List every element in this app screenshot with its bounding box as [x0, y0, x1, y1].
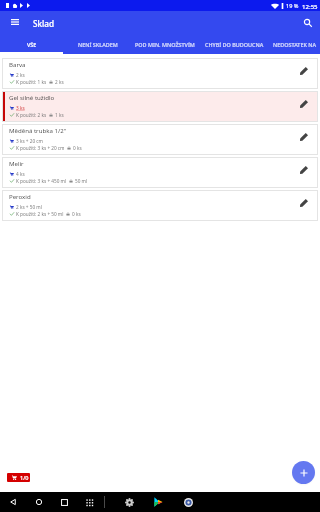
- staticText: NENÍ SKLADEM: [78, 41, 118, 48]
- button[interactable]: Home: [31, 492, 47, 512]
- button[interactable]: Peroxid: [3, 191, 317, 220]
- staticText: 2 ks: [16, 72, 25, 78]
- staticText: 3 ks + 20 cm: [16, 138, 43, 144]
- staticText: 4 ks: [16, 171, 25, 177]
- staticText: 12:55: [302, 2, 318, 10]
- button[interactable]: Add: [292, 461, 315, 484]
- staticText: POD MIN. MNOŽSTVÍM: [135, 41, 195, 48]
- staticText: 1 ks: [55, 112, 64, 118]
- staticText: 2 ks: [55, 79, 64, 85]
- button[interactable]: Edit: [296, 129, 312, 145]
- staticText: 19 %: [286, 2, 299, 10]
- button[interactable]: Edit: [296, 63, 312, 79]
- staticText: Gel silné tužidlo: [9, 93, 55, 101]
- staticText: 0 ks: [73, 145, 82, 151]
- staticText: Barva: [9, 60, 26, 68]
- button[interactable]: NENÍ SKLADEM: [64, 35, 131, 54]
- button[interactable]: Gel silné tužidlo: [3, 92, 317, 121]
- staticText: CHYBÍ DO BUDOUCNA: [205, 41, 264, 48]
- staticText: K použití: 3 ks + 450 ml: [16, 178, 67, 184]
- button[interactable]: Apps: [81, 492, 97, 512]
- button[interactable]: NEDOSTATEK NA: [270, 35, 320, 54]
- staticText: Měděná trubka 1/2": [9, 126, 67, 134]
- staticText: K použití: 3 ks + 20 cm: [16, 145, 65, 151]
- staticText: K použití: 1 ks: [16, 79, 47, 85]
- button[interactable]: Recents: [56, 492, 72, 512]
- button[interactable]: Settings: [121, 492, 137, 512]
- staticText: Sklad: [33, 18, 55, 29]
- staticText: VŠE: [27, 41, 37, 48]
- button[interactable]: Play Store: [150, 492, 166, 512]
- button[interactable]: Menu: [11, 16, 19, 30]
- button[interactable]: Edit: [296, 162, 312, 178]
- button[interactable]: Browser: [180, 492, 196, 512]
- button[interactable]: POD MIN. MNOŽSTVÍM: [131, 35, 199, 54]
- button[interactable]: Barva: [3, 59, 317, 88]
- button[interactable]: Edit: [296, 195, 312, 211]
- staticText: K použití: 2 ks: [16, 112, 47, 118]
- staticText: Peroxid: [9, 192, 31, 200]
- staticText: 2 ks + 50 ml: [16, 204, 42, 210]
- staticText: NEDOSTATEK NA: [273, 41, 317, 48]
- button[interactable]: Search: [300, 15, 316, 31]
- button[interactable]: Edit: [296, 96, 312, 112]
- staticText: 1/0: [20, 474, 29, 482]
- button[interactable]: CHYBÍ DO BUDOUCNA: [199, 35, 270, 54]
- button[interactable]: Měděná trubka 1/2": [3, 125, 317, 154]
- staticText: Melír: [9, 159, 24, 167]
- staticText: K použití: 2 ks + 50 ml: [16, 211, 64, 217]
- button[interactable]: Back: [5, 492, 21, 512]
- button[interactable]: VŠE: [0, 35, 64, 54]
- staticText: 3 ks: [16, 105, 25, 111]
- button[interactable]: 1/0: [7, 473, 30, 482]
- staticText: 0 ks: [72, 211, 81, 217]
- staticText: 50 ml: [75, 178, 88, 184]
- button[interactable]: Melír: [3, 158, 317, 187]
